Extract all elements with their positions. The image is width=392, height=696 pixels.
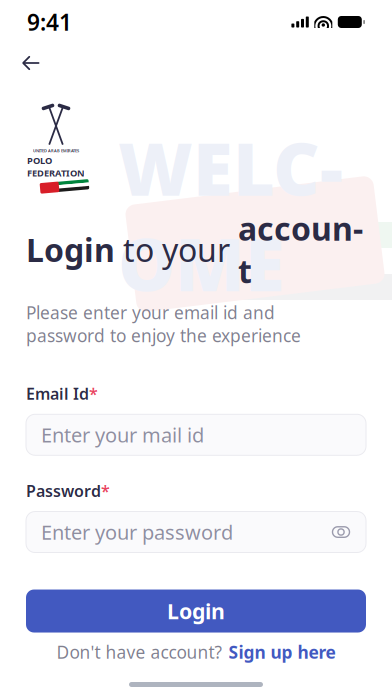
staticText: account [238, 207, 363, 292]
button[interactable]: Login [26, 589, 366, 632]
staticText: * [89, 383, 98, 404]
staticText: POLO FEDERATION [27, 154, 85, 179]
staticText: Enter your mail id [41, 421, 204, 448]
staticText: Login [167, 597, 225, 625]
button[interactable]: Don't have account? [44, 632, 347, 671]
staticText: Login [26, 228, 123, 271]
staticText: to your [123, 228, 238, 271]
button[interactable]: Back [13, 46, 49, 80]
staticText: 9:41 [27, 7, 72, 37]
staticText: Enter your password [41, 519, 233, 545]
staticText: UNITED ARAB EMIRATES [33, 148, 79, 153]
staticText: WELCOME [118, 120, 343, 311]
staticText: Email Id [26, 383, 89, 404]
staticText: Please enter your email id and password … [26, 301, 301, 347]
staticText: Password [26, 480, 101, 501]
staticText: Don't have account? [56, 640, 222, 663]
staticText: Sign up here [228, 640, 335, 663]
staticText: * [101, 480, 110, 501]
